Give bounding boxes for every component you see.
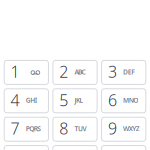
staticText: 7	[10, 118, 19, 139]
button[interactable]: #	[102, 146, 146, 150]
staticText: PQRS	[26, 124, 41, 133]
staticText: 5	[59, 89, 68, 111]
staticText: 8	[59, 118, 68, 139]
button[interactable]: 9	[102, 117, 146, 141]
staticText: JKL	[74, 96, 83, 105]
button[interactable]: 4	[4, 89, 48, 113]
staticText: DEF	[123, 67, 135, 76]
button[interactable]: ∗	[4, 146, 48, 150]
staticText: WXYZ	[123, 124, 140, 133]
button[interactable]: 1	[4, 60, 48, 84]
staticText: 9	[108, 118, 117, 139]
staticText: 6	[108, 89, 117, 111]
button[interactable]: 6	[102, 89, 146, 113]
button[interactable]: 0	[53, 146, 97, 150]
staticText: ABC	[74, 67, 85, 76]
staticText: 3	[108, 61, 117, 82]
button[interactable]: 8	[53, 117, 97, 141]
button[interactable]: 2	[53, 60, 97, 84]
staticText: 2	[59, 61, 68, 82]
staticText: 4	[10, 89, 19, 111]
staticText: TUV	[74, 124, 86, 133]
button[interactable]: 5	[53, 89, 97, 113]
button[interactable]: 7	[4, 117, 48, 141]
staticText: MNO	[123, 96, 138, 105]
button[interactable]: 3	[102, 60, 146, 84]
staticText: GHI	[26, 96, 37, 105]
staticText: 1	[10, 61, 19, 82]
